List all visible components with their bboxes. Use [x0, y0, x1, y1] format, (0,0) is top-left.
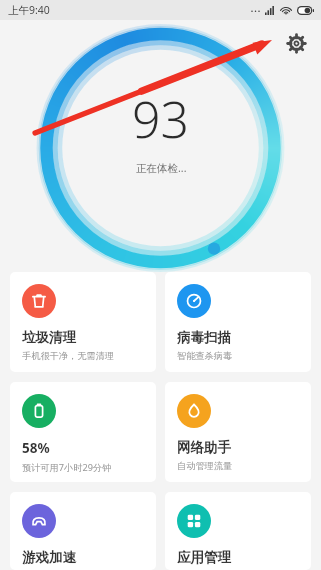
button[interactable]: 网络助手	[165, 382, 311, 482]
staticText: 应用管理	[177, 549, 231, 566]
staticText: 网络助手	[177, 439, 231, 456]
staticText: 智能查杀病毒	[177, 350, 233, 362]
button[interactable]: 应用管理	[165, 492, 311, 570]
staticText: 游戏加速	[22, 549, 76, 566]
staticText: 自动管理流量	[177, 460, 233, 472]
staticText: 上午9:40	[8, 3, 50, 17]
staticText: 垃圾清理	[22, 329, 76, 346]
button[interactable]: 垃圾清理	[10, 272, 156, 372]
staticText: 93	[132, 85, 190, 153]
button[interactable]: 游戏加速	[10, 492, 156, 570]
button[interactable]: Settings	[279, 26, 313, 60]
button[interactable]: 病毒扫描	[165, 272, 311, 372]
staticText: 正在体检...	[136, 161, 187, 175]
staticText: 预计可用7小时29分钟	[22, 461, 112, 474]
button[interactable]: 58%	[10, 382, 156, 482]
staticText: 手机很干净，无需清理	[22, 350, 114, 362]
staticText: 病毒扫描	[177, 329, 231, 346]
staticText: 58%	[22, 439, 50, 457]
